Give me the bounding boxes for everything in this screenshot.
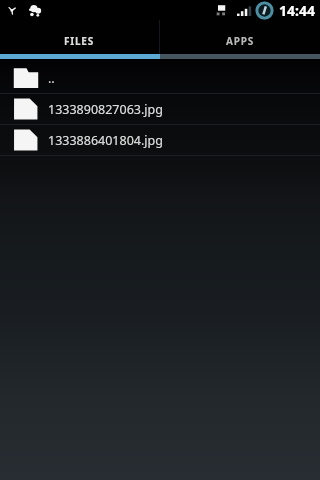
staticText: APPS	[226, 34, 255, 48]
staticText: ..	[48, 70, 55, 87]
other: USB debugging	[28, 3, 42, 17]
staticText: 1333886401804.jpg	[48, 132, 163, 149]
button[interactable]: 1333890827063.jpg	[0, 94, 320, 125]
other: Alarm set	[255, 1, 274, 20]
button[interactable]: FILES	[0, 20, 159, 54]
other: Signal strength	[237, 4, 253, 16]
staticText: 14:44	[279, 1, 315, 20]
button[interactable]: APPS	[160, 20, 320, 54]
other: USB connected	[8, 6, 16, 14]
button[interactable]: 1333886401804.jpg	[0, 125, 320, 156]
staticText: FILES	[64, 34, 95, 48]
button[interactable]: ..	[0, 63, 320, 94]
other: No SIM card	[216, 5, 227, 16]
staticText: 1333890827063.jpg	[48, 101, 163, 118]
